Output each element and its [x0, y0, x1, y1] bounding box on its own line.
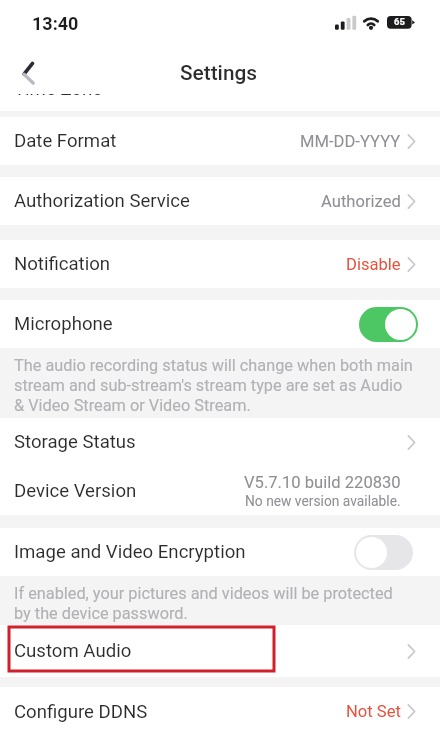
- button[interactable]: Device Version: [0, 466, 440, 515]
- button[interactable]: Date Format: [0, 117, 440, 165]
- staticText: Date Format: [14, 130, 117, 152]
- staticText: Device Version: [14, 480, 137, 502]
- button[interactable]: Microphone: [0, 300, 440, 348]
- button[interactable]: Image and Video Encryption: [0, 528, 440, 576]
- staticText: Not Set: [346, 702, 401, 721]
- staticText: No new version available.: [245, 493, 401, 509]
- staticText: Time Zone: [14, 94, 103, 95]
- staticText: Disable: [346, 255, 401, 274]
- staticText: V5.7.10 build 220830: [244, 473, 401, 492]
- staticText: Configure DDNS: [14, 701, 148, 723]
- button[interactable]: Back: [0, 46, 50, 94]
- button[interactable]: Notification: [0, 240, 440, 288]
- staticText: The audio recording status will change w…: [14, 356, 413, 414]
- staticText: MM-DD-YYYY: [300, 132, 401, 151]
- button[interactable]: Storage Status: [0, 418, 440, 466]
- staticText: Notification: [14, 253, 111, 275]
- button[interactable]: Authorization Service: [0, 177, 440, 225]
- staticText: Image and Video Encryption: [14, 541, 246, 563]
- staticText: Authorization Service: [14, 190, 190, 212]
- staticText: Microphone: [14, 313, 113, 335]
- staticText: Settings: [180, 61, 257, 85]
- staticText: 65: [387, 16, 412, 27]
- staticText: If enabled, your pictures and videos wil…: [14, 584, 393, 622]
- button[interactable]: Configure DDNS: [0, 687, 440, 736]
- staticText: Authorized: [321, 192, 401, 211]
- staticText: 13:40: [32, 13, 79, 34]
- staticText: Custom Audio: [14, 640, 132, 662]
- staticText: Storage Status: [14, 431, 136, 453]
- button[interactable]: Custom Audio: [0, 625, 440, 677]
